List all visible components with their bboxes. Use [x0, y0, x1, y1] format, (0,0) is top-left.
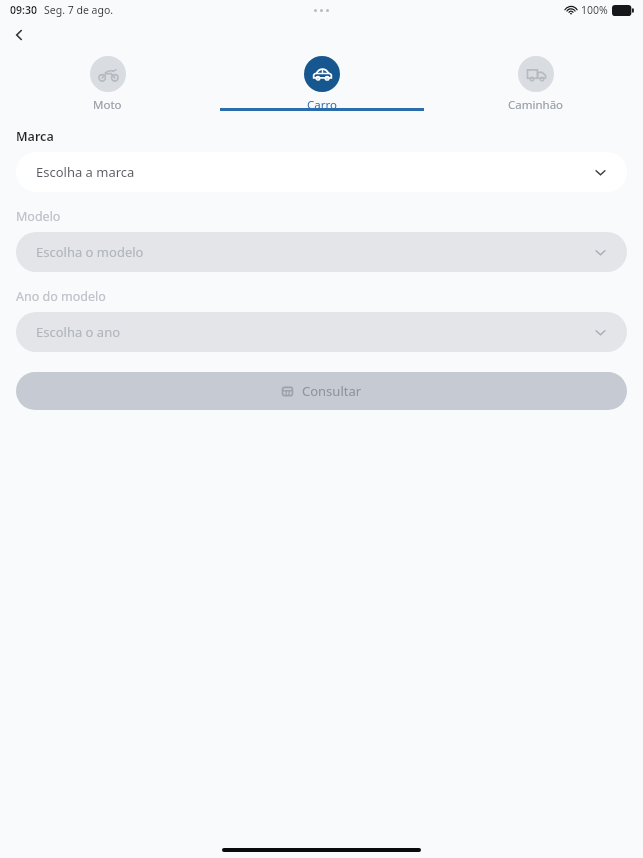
staticText: Moto: [93, 97, 122, 112]
staticText: Escolha a marca: [36, 163, 135, 181]
staticText: Carro: [307, 97, 337, 112]
staticText: Marca: [16, 128, 54, 145]
button[interactable]: Consultar: [16, 372, 627, 410]
staticText: Modelo: [16, 208, 61, 225]
staticText: Ano do modelo: [16, 288, 106, 305]
staticText: Consultar: [302, 382, 362, 400]
button[interactable]: Escolha o ano: [16, 312, 627, 352]
staticText: Caminhão: [508, 97, 564, 112]
button[interactable]: Escolha a marca: [16, 152, 627, 192]
button[interactable]: Escolha o modelo: [16, 232, 627, 272]
button[interactable]: Moto: [0, 50, 215, 112]
button[interactable]: Caminhão: [429, 50, 643, 112]
staticText: 09:30: [10, 3, 37, 17]
button[interactable]: Carro: [215, 50, 429, 112]
staticText: Escolha o ano: [36, 323, 121, 341]
staticText: 100%: [581, 3, 608, 17]
button[interactable]: Voltar: [6, 22, 32, 48]
staticText: Seg. 7 de ago.: [44, 3, 114, 17]
staticText: Escolha o modelo: [36, 243, 144, 261]
